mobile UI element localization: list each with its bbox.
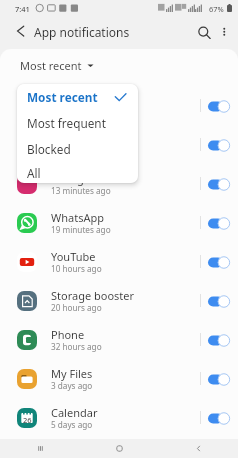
button[interactable]: Search (192, 21, 216, 45)
button[interactable]: Most recent (17, 84, 138, 110)
staticText: Samsung Music (51, 93, 133, 108)
button[interactable]: Notifications toggle (208, 334, 230, 347)
button[interactable]: WhatsApp (0, 203, 238, 242)
button[interactable]: Recent apps (0, 439, 80, 458)
button[interactable]: Instagram (0, 164, 238, 203)
staticText: 20 hours ago (51, 302, 102, 313)
staticText: 26 (23, 415, 32, 425)
staticText: WhatsApp (51, 210, 104, 225)
button[interactable]: Notifications toggle (208, 295, 230, 308)
staticText: Messages (51, 132, 103, 147)
staticText: 10 hours ago (51, 263, 102, 274)
button[interactable]: Phone (0, 320, 238, 359)
staticText: 67% (209, 4, 224, 14)
staticText: Instagram (51, 171, 105, 186)
button[interactable]: Storage booster (0, 281, 238, 320)
staticText: 32 hours ago (51, 341, 102, 352)
button[interactable]: Messages (0, 125, 238, 164)
button[interactable]: Most frequent (17, 110, 138, 136)
staticText: My Files (51, 366, 93, 381)
button[interactable]: Notifications toggle (208, 139, 230, 152)
staticText: Phone (51, 327, 85, 342)
staticText: 3 days ago (51, 380, 93, 391)
button[interactable]: Blocked (17, 136, 138, 162)
button[interactable]: 26 (0, 398, 238, 437)
staticText: Calendar (51, 405, 98, 420)
staticText: Storage booster (51, 288, 135, 303)
button[interactable]: Notifications toggle (208, 217, 230, 230)
button[interactable]: Notifications toggle (208, 412, 230, 425)
staticText: 7:41 (15, 4, 30, 14)
button[interactable]: Most recent (5, 53, 105, 77)
staticText: All (27, 165, 41, 181)
button[interactable]: Notifications toggle (208, 178, 230, 191)
button[interactable]: Notifications toggle (208, 373, 230, 386)
staticText: YouTube (51, 249, 96, 264)
staticText: 5 days ago (51, 419, 93, 430)
button[interactable]: My Files (0, 359, 238, 398)
button[interactable]: All (17, 162, 138, 183)
staticText: 12 minutes ago (51, 146, 111, 157)
button[interactable]: Samsung Music (0, 86, 238, 125)
button[interactable]: Home (80, 439, 159, 458)
button[interactable]: More options (213, 21, 237, 45)
button[interactable]: Navigate up (8, 19, 32, 43)
staticText: 19 minutes ago (51, 224, 111, 235)
staticText: 13 minutes ago (51, 185, 111, 196)
staticText: Most frequent (27, 115, 106, 131)
button[interactable]: Back (159, 439, 238, 458)
button[interactable]: Notifications toggle (208, 100, 230, 113)
staticText: Blocked (27, 141, 71, 157)
staticText: Most recent (20, 58, 82, 73)
button[interactable]: YouTube (0, 242, 238, 281)
staticText: App notifications (34, 24, 130, 40)
staticText: Most recent (27, 89, 98, 105)
button[interactable]: Notifications toggle (208, 256, 230, 269)
